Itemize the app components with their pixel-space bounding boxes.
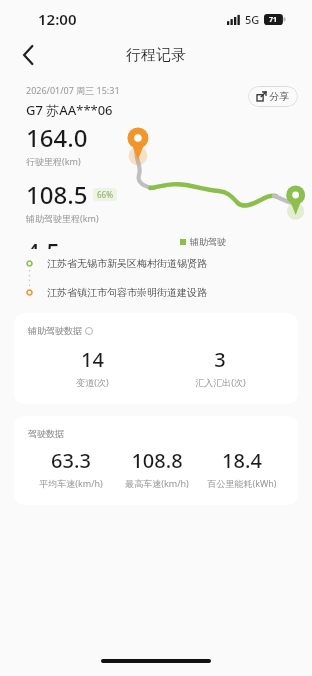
staticText: 江苏省无锡市新吴区梅村街道锡贤路 <box>47 257 207 270</box>
staticText: 平均车速(km/h) <box>39 477 103 489</box>
staticText: 4.5 <box>26 235 60 249</box>
staticText: 变道(次) <box>76 376 109 388</box>
staticText: 2026/01/07 周三 15:31 <box>26 84 120 96</box>
staticText: 分享 <box>269 90 289 103</box>
staticText: 5G <box>245 12 260 27</box>
staticText: 108.5 <box>26 178 88 211</box>
staticText: 最高车速(km/h) <box>125 477 189 489</box>
button[interactable]: 辅助驾驶数据 <box>14 313 298 404</box>
staticText: 12:00 <box>38 9 77 29</box>
staticText: 18.4 <box>222 447 262 474</box>
staticText: 汇入汇出(次) <box>195 376 246 388</box>
staticText: 辅助驾驶里程(km) <box>26 212 99 224</box>
button[interactable]: 驾驶数据 <box>14 416 298 505</box>
staticText: G7 苏AA***06 <box>26 101 113 119</box>
button[interactable]: Back <box>12 39 44 71</box>
staticText: 行驶里程(km) <box>26 155 81 167</box>
staticText: 行程记录 <box>126 46 186 65</box>
staticText: 百公里能耗(kWh) <box>207 477 277 489</box>
staticText: 辅助驾驶 <box>190 236 226 247</box>
staticText: 164.0 <box>26 121 88 154</box>
staticText: 71 <box>269 15 278 25</box>
staticText: 辅助驾驶数据 <box>28 325 82 336</box>
staticText: 江苏省镇江市句容市崇明街道建设路 <box>47 286 207 299</box>
staticText: 3 <box>214 346 226 373</box>
staticText: 108.8 <box>131 447 183 474</box>
staticText: 驾驶数据 <box>28 428 64 439</box>
button[interactable]: 分享 <box>248 86 298 107</box>
staticText: 63.3 <box>51 447 91 474</box>
staticText: 14 <box>81 346 104 373</box>
staticText: 66% <box>97 189 113 200</box>
